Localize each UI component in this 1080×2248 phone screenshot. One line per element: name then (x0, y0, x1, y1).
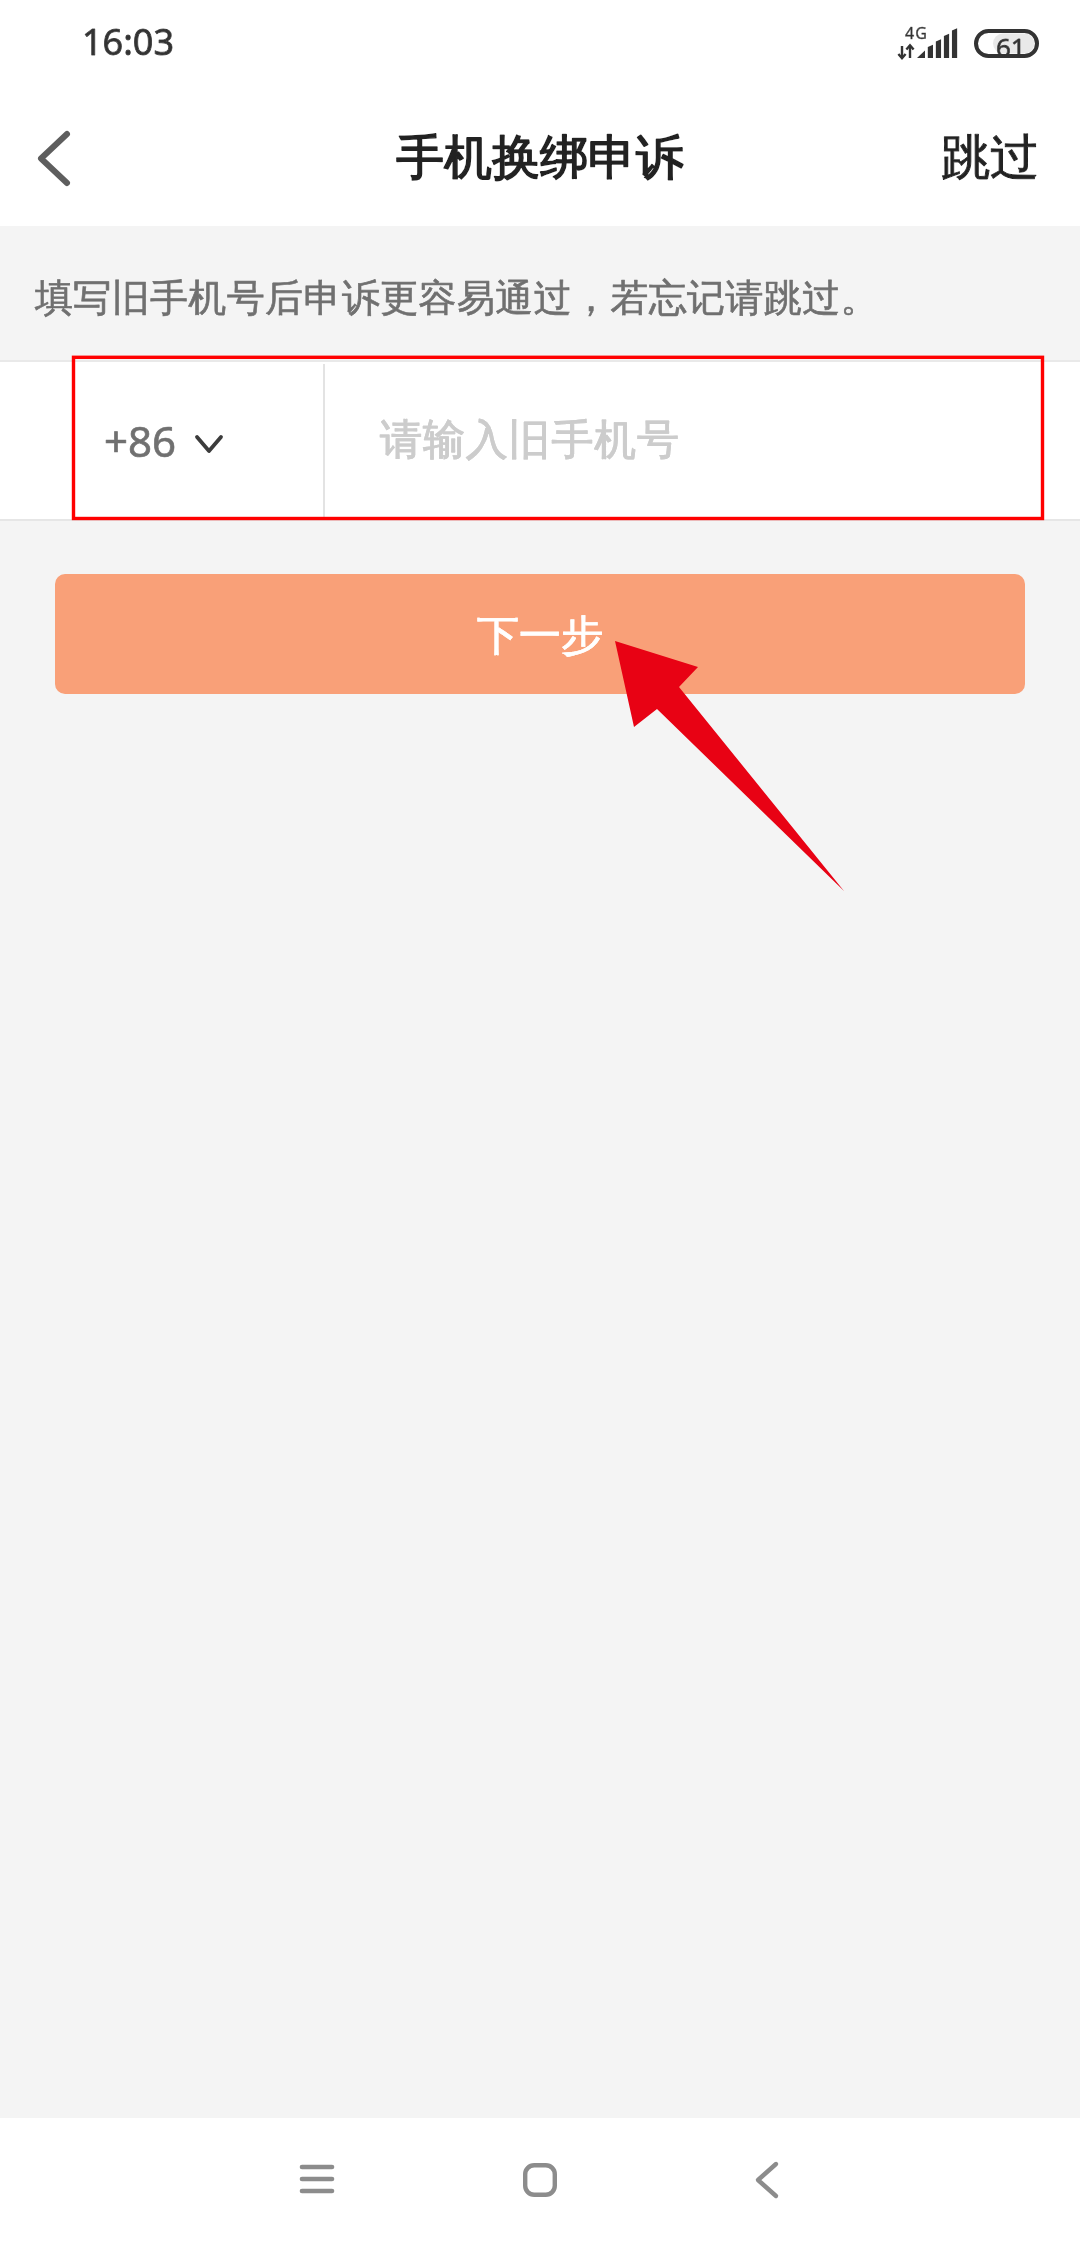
staticText: 手机换绑申诉 (396, 128, 684, 188)
button[interactable]: 下一步 (55, 574, 1025, 694)
button[interactable]: Recent apps (251, 2118, 383, 2248)
staticText: +86 (104, 412, 177, 469)
staticText: 跳过 (941, 127, 1039, 189)
staticText: 手机换绑申诉 (396, 128, 684, 188)
staticText: 4G (905, 22, 929, 44)
staticText: 填写旧手机号后申诉更容易通过，若忘记请跳过。 (35, 274, 879, 322)
staticText: 61 (996, 29, 1026, 64)
button[interactable]: +86 (0, 362, 323, 519)
button[interactable]: 跳过 (896, 82, 1080, 226)
staticText: +86 (104, 412, 177, 469)
button[interactable]: Back (9, 109, 99, 199)
staticText: 填写旧手机号后申诉更容易通过，若忘记请跳过。 (35, 274, 879, 322)
button[interactable]: Home (474, 2118, 606, 2248)
staticText: 16:03 (82, 17, 175, 66)
staticText: 下一步 (477, 610, 603, 663)
staticText: 请输入旧手机号 (380, 414, 680, 467)
staticText: 16:03 (82, 17, 175, 66)
staticText: 61 (996, 29, 1026, 64)
button[interactable]: Back (701, 2118, 833, 2248)
staticText: 下一步 (477, 610, 603, 663)
staticText: 4G (905, 22, 929, 44)
staticText: 跳过 (941, 127, 1039, 189)
staticText: 请输入旧手机号 (380, 414, 680, 467)
button[interactable]: 请输入旧手机号 (325, 362, 1080, 519)
